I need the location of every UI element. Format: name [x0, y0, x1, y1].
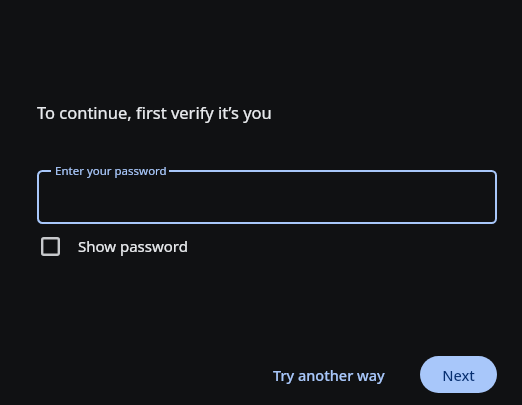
button[interactable]: Next — [420, 356, 497, 393]
staticText: Enter your password — [55, 163, 167, 179]
staticText: To continue, first verify it’s you — [37, 101, 272, 123]
button[interactable]: Enter your password — [37, 170, 497, 224]
button[interactable]: Show password — [37, 232, 188, 260]
staticText: Try another way — [273, 365, 385, 385]
staticText: Next — [442, 365, 475, 385]
staticText: Show password — [78, 236, 188, 256]
button[interactable]: Try another way — [261, 356, 397, 393]
